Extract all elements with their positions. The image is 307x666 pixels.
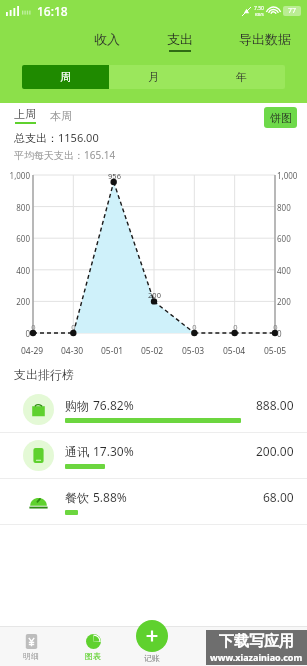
staticText: 月 [148, 70, 159, 84]
button[interactable]: 购物 [0, 387, 307, 432]
button[interactable]: 支出 [165, 31, 195, 52]
button[interactable]: 收入 [92, 31, 122, 52]
staticText: 0 [192, 322, 197, 332]
staticText: 200 [148, 290, 161, 300]
staticText: KB/S [255, 12, 264, 17]
staticText: 05-02 [141, 345, 164, 357]
staticText: www.xiazainiao.com [210, 651, 303, 663]
staticText: 600 [277, 233, 306, 244]
staticText: 800 [277, 202, 306, 213]
staticText: 餐饮 [65, 490, 89, 505]
staticText: 饼图 [270, 111, 292, 125]
staticText: 600 [1, 233, 30, 244]
staticText: 16:18 [37, 3, 68, 19]
staticText: 上周 [14, 107, 36, 121]
staticText: 17.30% [93, 443, 134, 459]
staticText: 下载写应用 [219, 632, 294, 651]
staticText: 68.00 [263, 489, 294, 505]
button[interactable]: 餐饮 [0, 479, 307, 524]
staticText: 0 [277, 328, 306, 339]
button[interactable]: 导出数据 [237, 31, 293, 52]
staticText: 05-05 [264, 345, 287, 357]
button[interactable]: 上周 [14, 107, 36, 124]
button[interactable]: 通讯 [0, 433, 307, 478]
button[interactable]: 图表 [62, 620, 124, 666]
staticText: 0 [1, 328, 30, 339]
staticText: 周 [60, 70, 71, 84]
staticText: 1,000 [277, 170, 306, 181]
staticText: 400 [1, 265, 30, 276]
staticText: 支出 [167, 31, 193, 47]
staticText: 记账 [144, 653, 160, 663]
staticText: 0 [71, 322, 76, 332]
staticText: 05-01 [101, 345, 124, 357]
staticText: 956 [108, 171, 121, 181]
staticText: 05-03 [182, 345, 205, 357]
staticText: 400 [277, 265, 306, 276]
button[interactable]: 周 [22, 65, 109, 89]
staticText: 购物 [65, 398, 89, 413]
staticText: 888.00 [256, 397, 294, 413]
button[interactable]: 饼图 [264, 107, 297, 128]
staticText: 05-04 [223, 345, 246, 357]
button[interactable]: 年 [197, 65, 285, 89]
staticText: 收入 [94, 31, 120, 47]
staticText: 明细 [23, 651, 39, 661]
button[interactable]: 记账 [136, 620, 168, 666]
staticText: 1,000 [1, 170, 30, 181]
staticText: 77 [288, 6, 297, 16]
button[interactable]: 本周 [50, 109, 72, 123]
staticText: 0 [31, 322, 36, 332]
staticText: 总支出：1156.00 [14, 130, 99, 145]
staticText: 76.82% [93, 397, 134, 413]
button[interactable]: 月 [109, 65, 197, 89]
staticText: 导出数据 [239, 31, 291, 47]
staticText: 0 [233, 322, 238, 332]
button[interactable]: 明细 [0, 620, 62, 666]
staticText: 800 [1, 202, 30, 213]
staticText: 图表 [85, 651, 101, 661]
staticText: 200.00 [256, 443, 294, 459]
staticText: 年 [236, 70, 247, 84]
staticText: 200 [277, 296, 306, 307]
staticText: 支出排行榜 [14, 367, 74, 382]
staticText: 0 [273, 322, 278, 332]
staticText: 7.50 [254, 5, 264, 12]
staticText: 平均每天支出：165.14 [14, 148, 116, 161]
staticText: 本周 [50, 109, 72, 123]
staticText: 通讯 [65, 444, 89, 459]
staticText: 04-30 [61, 345, 84, 357]
staticText: 5.88% [93, 489, 127, 505]
staticText: 04-29 [21, 345, 44, 357]
staticText: 200 [1, 296, 30, 307]
